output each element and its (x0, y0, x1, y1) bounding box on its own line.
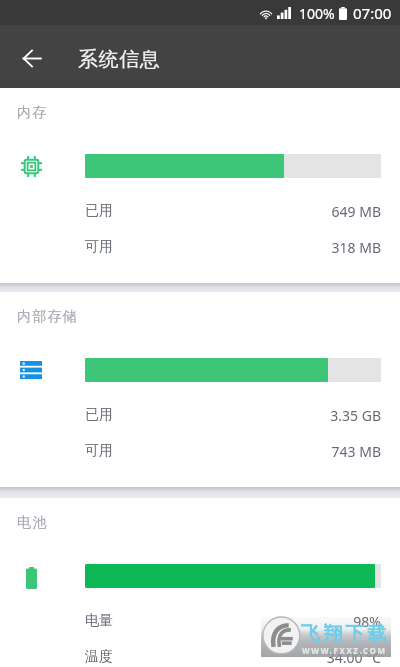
button[interactable]: 电量 (0, 603, 400, 639)
staticText: 系统信息 (78, 47, 161, 72)
staticText: 07:00 (353, 3, 392, 23)
button[interactable]: 可用 (0, 433, 400, 469)
staticText: 743 MB (121, 442, 381, 461)
staticText: 电量 (85, 612, 113, 630)
staticText: 电池 (17, 514, 48, 532)
button[interactable]: 可用 (0, 229, 400, 265)
staticText: WWW.FXXZ.COM (302, 645, 387, 656)
staticText: 649 MB (121, 202, 381, 221)
staticText: 3.35 GB (121, 406, 381, 425)
button[interactable]: 已用 (0, 193, 400, 229)
staticText: 已用 (85, 406, 113, 424)
staticText: 98% (121, 612, 381, 631)
staticText: 内存 (17, 104, 48, 122)
staticText: 100% (299, 4, 335, 23)
staticText: 可用 (85, 238, 113, 256)
staticText: 可用 (85, 442, 113, 460)
staticText: 34.00 °C (121, 648, 381, 667)
button[interactable]: Back (12, 38, 52, 78)
staticText: 飞翔下载 (301, 622, 390, 646)
button[interactable]: 已用 (0, 397, 400, 433)
staticText: 内部存储 (17, 308, 78, 326)
staticText: 温度 (85, 648, 113, 666)
button[interactable]: 温度 (0, 639, 400, 667)
staticText: 318 MB (121, 238, 381, 257)
staticText: 已用 (85, 202, 113, 220)
